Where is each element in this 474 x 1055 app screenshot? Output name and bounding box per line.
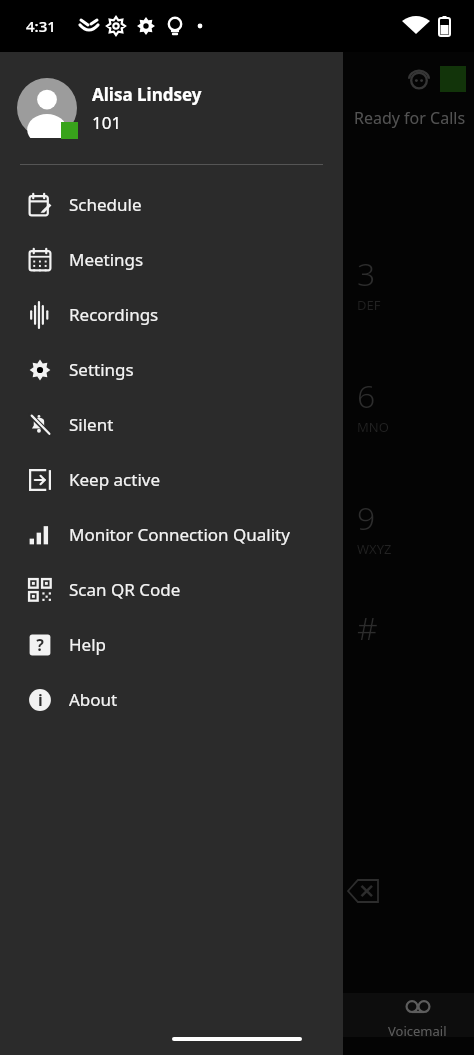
- button[interactable]: Voicemail: [361, 993, 474, 1037]
- button[interactable]: ?: [0, 617, 343, 672]
- staticText: 3: [357, 252, 376, 296]
- button[interactable]: Silent: [0, 397, 343, 452]
- staticText: i: [38, 689, 43, 711]
- button[interactable]: Recordings: [0, 287, 343, 342]
- other: Headset: [406, 66, 432, 92]
- staticText: ?: [36, 634, 44, 656]
- staticText: About: [69, 688, 118, 711]
- other: Backspace: [348, 880, 378, 902]
- staticText: 4:31: [26, 16, 56, 36]
- button[interactable]: Keep active: [0, 452, 343, 507]
- button[interactable]: Settings: [0, 342, 343, 397]
- staticText: WXYZ: [357, 540, 392, 558]
- staticText: Schedule: [69, 193, 142, 216]
- staticText: Keep active: [69, 468, 161, 491]
- button[interactable]: Scan QR Code: [0, 562, 343, 617]
- staticText: Meetings: [69, 248, 144, 271]
- staticText: 9: [357, 496, 376, 540]
- staticText: Recordings: [69, 303, 159, 326]
- button[interactable]: i: [0, 672, 343, 727]
- staticText: Monitor Connection Quality: [69, 523, 290, 546]
- staticText: Silent: [69, 413, 114, 436]
- staticText: Voicemail: [388, 1022, 447, 1037]
- staticText: Help: [69, 633, 107, 656]
- staticText: Alisa Lindsey: [92, 83, 202, 106]
- staticText: MNO: [357, 418, 389, 436]
- button[interactable]: Schedule: [0, 177, 343, 232]
- button[interactable]: 3: [248, 993, 361, 1037]
- button[interactable]: Meetings: [0, 232, 343, 287]
- staticText: 101: [92, 111, 122, 134]
- staticText: Settings: [69, 358, 134, 381]
- staticText: Scan QR Code: [69, 578, 181, 601]
- staticText: #: [357, 606, 378, 650]
- button[interactable]: Monitor Connection Quality: [0, 507, 343, 562]
- button[interactable]: Alisa Lindsey: [0, 52, 343, 164]
- staticText: DEF: [357, 296, 381, 314]
- staticText: Ready for Calls: [354, 107, 466, 129]
- staticText: 6: [357, 374, 376, 418]
